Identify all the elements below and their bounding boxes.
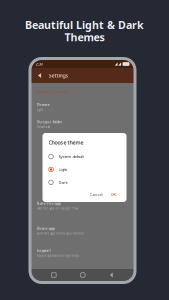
button[interactable]: System default <box>42 150 126 163</box>
button[interactable]: Dark <box>42 176 126 189</box>
button[interactable]: Recents <box>48 269 60 281</box>
staticText: Download <box>36 125 50 129</box>
staticText: Rate the app <box>36 200 60 206</box>
button[interactable]: Back <box>105 268 117 282</box>
staticText: Choose theme <box>48 139 83 146</box>
button[interactable]: OK <box>110 192 116 197</box>
staticText: Light <box>58 167 66 172</box>
staticText: Support <box>36 247 51 253</box>
button[interactable]: Back <box>34 70 44 81</box>
staticText: 2:30 <box>35 61 42 67</box>
button[interactable]: Output folder <box>31 115 133 132</box>
staticText: Theme <box>36 102 49 107</box>
button[interactable]: Light <box>42 163 126 176</box>
staticText: System default <box>58 154 83 159</box>
staticText: Audio Converter <box>36 89 68 94</box>
staticText: Share app <box>36 225 54 231</box>
button[interactable]: Home <box>76 268 89 281</box>
staticText: Light <box>36 108 43 112</box>
staticText: Dark <box>58 180 67 185</box>
staticText: Send the app link to your friends <box>36 232 83 235</box>
staticText: Output folder <box>36 119 62 124</box>
button[interactable]: Support <box>31 244 133 261</box>
button[interactable]: Rate the app <box>31 197 133 214</box>
staticText: Report a problem or get help <box>36 254 79 257</box>
staticText: OK <box>110 192 116 197</box>
staticText: Themes <box>64 30 104 44</box>
button[interactable]: Share app <box>31 222 133 239</box>
staticText: Settings <box>48 72 68 79</box>
staticText: Beautiful Light & Dark <box>25 18 144 32</box>
staticText: Rate the app on Google Play <box>36 207 77 210</box>
button[interactable]: Cancel <box>89 192 102 197</box>
button[interactable]: Theme <box>31 98 133 115</box>
staticText: Cancel <box>89 192 102 197</box>
